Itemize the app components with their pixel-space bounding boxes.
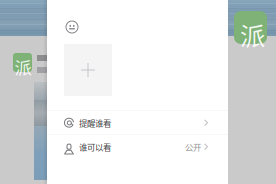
button[interactable]: 谁可以看 <box>47 135 228 159</box>
button[interactable]: 提醒谁看 <box>47 111 228 135</box>
staticText: 谁可以看 <box>79 141 111 153</box>
staticText: 公开 <box>185 141 201 153</box>
staticText: 派 <box>14 54 31 79</box>
staticText: 提醒谁看 <box>79 117 111 129</box>
button[interactable]: Add photo <box>64 44 112 96</box>
button[interactable]: Emoji <box>66 21 78 33</box>
staticText: 派 <box>240 16 265 53</box>
